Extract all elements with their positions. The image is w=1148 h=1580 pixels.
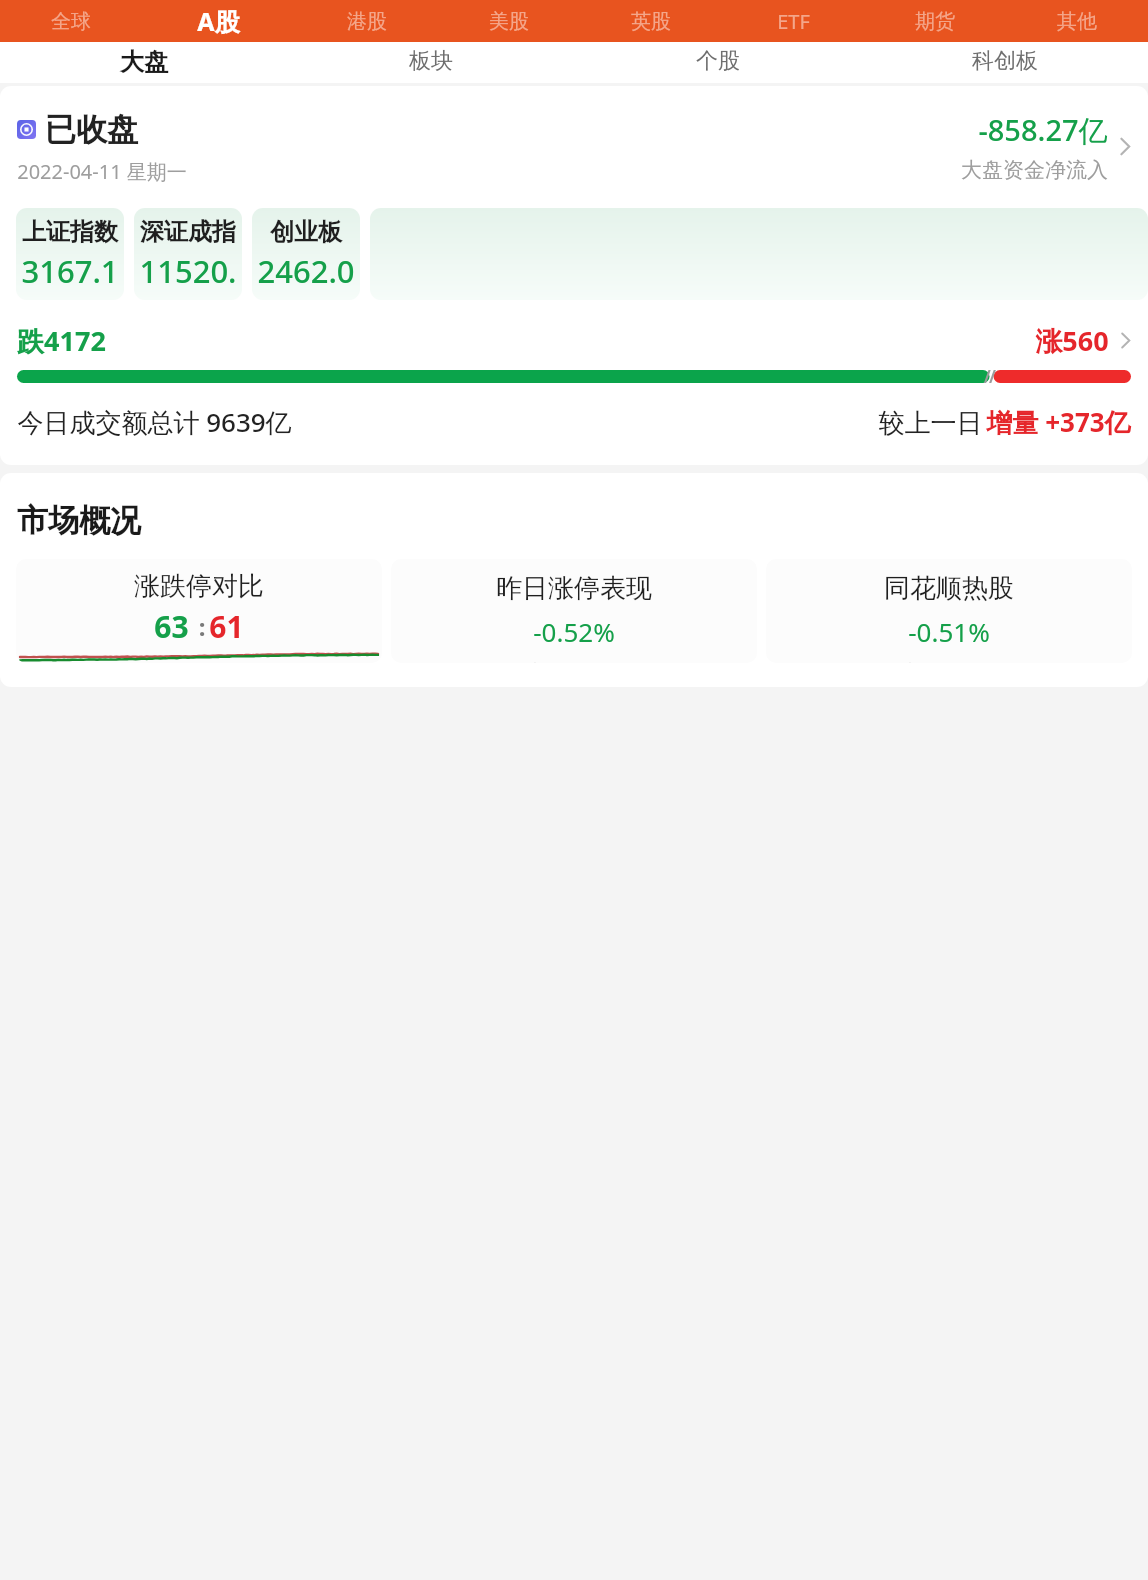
staticText: 期货 <box>915 9 955 34</box>
staticText: 同花顺热股 <box>884 572 1014 605</box>
button[interactable]: 英股 <box>580 0 722 42</box>
button[interactable]: 深证成指 <box>134 208 242 300</box>
staticText: 板块 <box>409 47 453 75</box>
button[interactable]: 跌4172 <box>17 322 1131 359</box>
button[interactable]: -858.27亿 <box>961 110 1131 183</box>
staticText: 涨跌停对比 <box>134 570 264 603</box>
staticText: 其他 <box>1057 9 1097 34</box>
staticText: 港股 <box>347 9 387 34</box>
staticText: -0.51% <box>908 614 990 649</box>
button[interactable]: 板块 <box>287 42 574 83</box>
button[interactable]: 全球 <box>0 0 141 42</box>
button[interactable]: 期货 <box>864 0 1006 42</box>
staticText: 大盘资金净流入 <box>961 157 1108 183</box>
staticText: : <box>189 610 209 643</box>
button[interactable]: ETF <box>722 0 864 42</box>
button[interactable]: 上证指数 <box>16 208 124 300</box>
staticText: 61 <box>209 606 244 647</box>
other: More <box>1120 331 1131 350</box>
other: More <box>1119 136 1131 157</box>
button[interactable]: 美股 <box>438 0 580 42</box>
staticText: 个股 <box>696 47 740 75</box>
button[interactable]: 大盘 <box>0 42 287 83</box>
button[interactable]: 创业板 <box>252 208 360 300</box>
staticText: 今日成交额总计 9639亿 <box>17 404 292 440</box>
staticText: 涨560 <box>1035 322 1109 359</box>
staticText: 已收盘 <box>45 110 138 149</box>
staticText: 63 <box>154 606 189 647</box>
staticText: 跌4172 <box>17 322 106 359</box>
staticText: 上证指数 <box>22 217 118 247</box>
staticText: 英股 <box>631 9 671 34</box>
staticText: 创业板 <box>270 217 342 247</box>
staticText: 大盘 <box>120 47 168 77</box>
staticText: 全球 <box>51 9 91 34</box>
staticText: 2462.04 <box>252 250 360 300</box>
button[interactable]: 港股 <box>296 0 438 42</box>
staticText: 美股 <box>489 9 529 34</box>
staticText: 深证成指 <box>140 217 236 247</box>
staticText: 昨日涨停表现 <box>496 572 652 605</box>
staticText: A股 <box>197 4 240 38</box>
staticText: 增量 +373亿 <box>986 404 1131 440</box>
staticText: ETF <box>777 8 810 35</box>
button[interactable]: 个股 <box>574 42 861 83</box>
button[interactable]: 科创板 <box>861 42 1148 83</box>
staticText: 较上一日 <box>875 404 986 440</box>
button[interactable]: 昨日涨停表现 <box>391 559 757 663</box>
staticText: 科创板 <box>972 47 1038 75</box>
button[interactable]: A股 <box>141 0 296 42</box>
button[interactable] <box>370 208 1148 300</box>
staticText: 2022-04-11 星期一 <box>17 158 187 185</box>
button[interactable]: 涨跌停对比 <box>16 559 382 663</box>
staticText: -858.27亿 <box>978 110 1108 150</box>
staticText: -0.52% <box>533 614 615 649</box>
staticText: 市场概况 <box>17 501 141 540</box>
button[interactable]: 其他 <box>1006 0 1148 42</box>
button[interactable]: 同花顺热股 <box>766 559 1132 663</box>
staticText: 11520.21 <box>134 250 242 300</box>
staticText: 3167.13 <box>16 250 124 300</box>
